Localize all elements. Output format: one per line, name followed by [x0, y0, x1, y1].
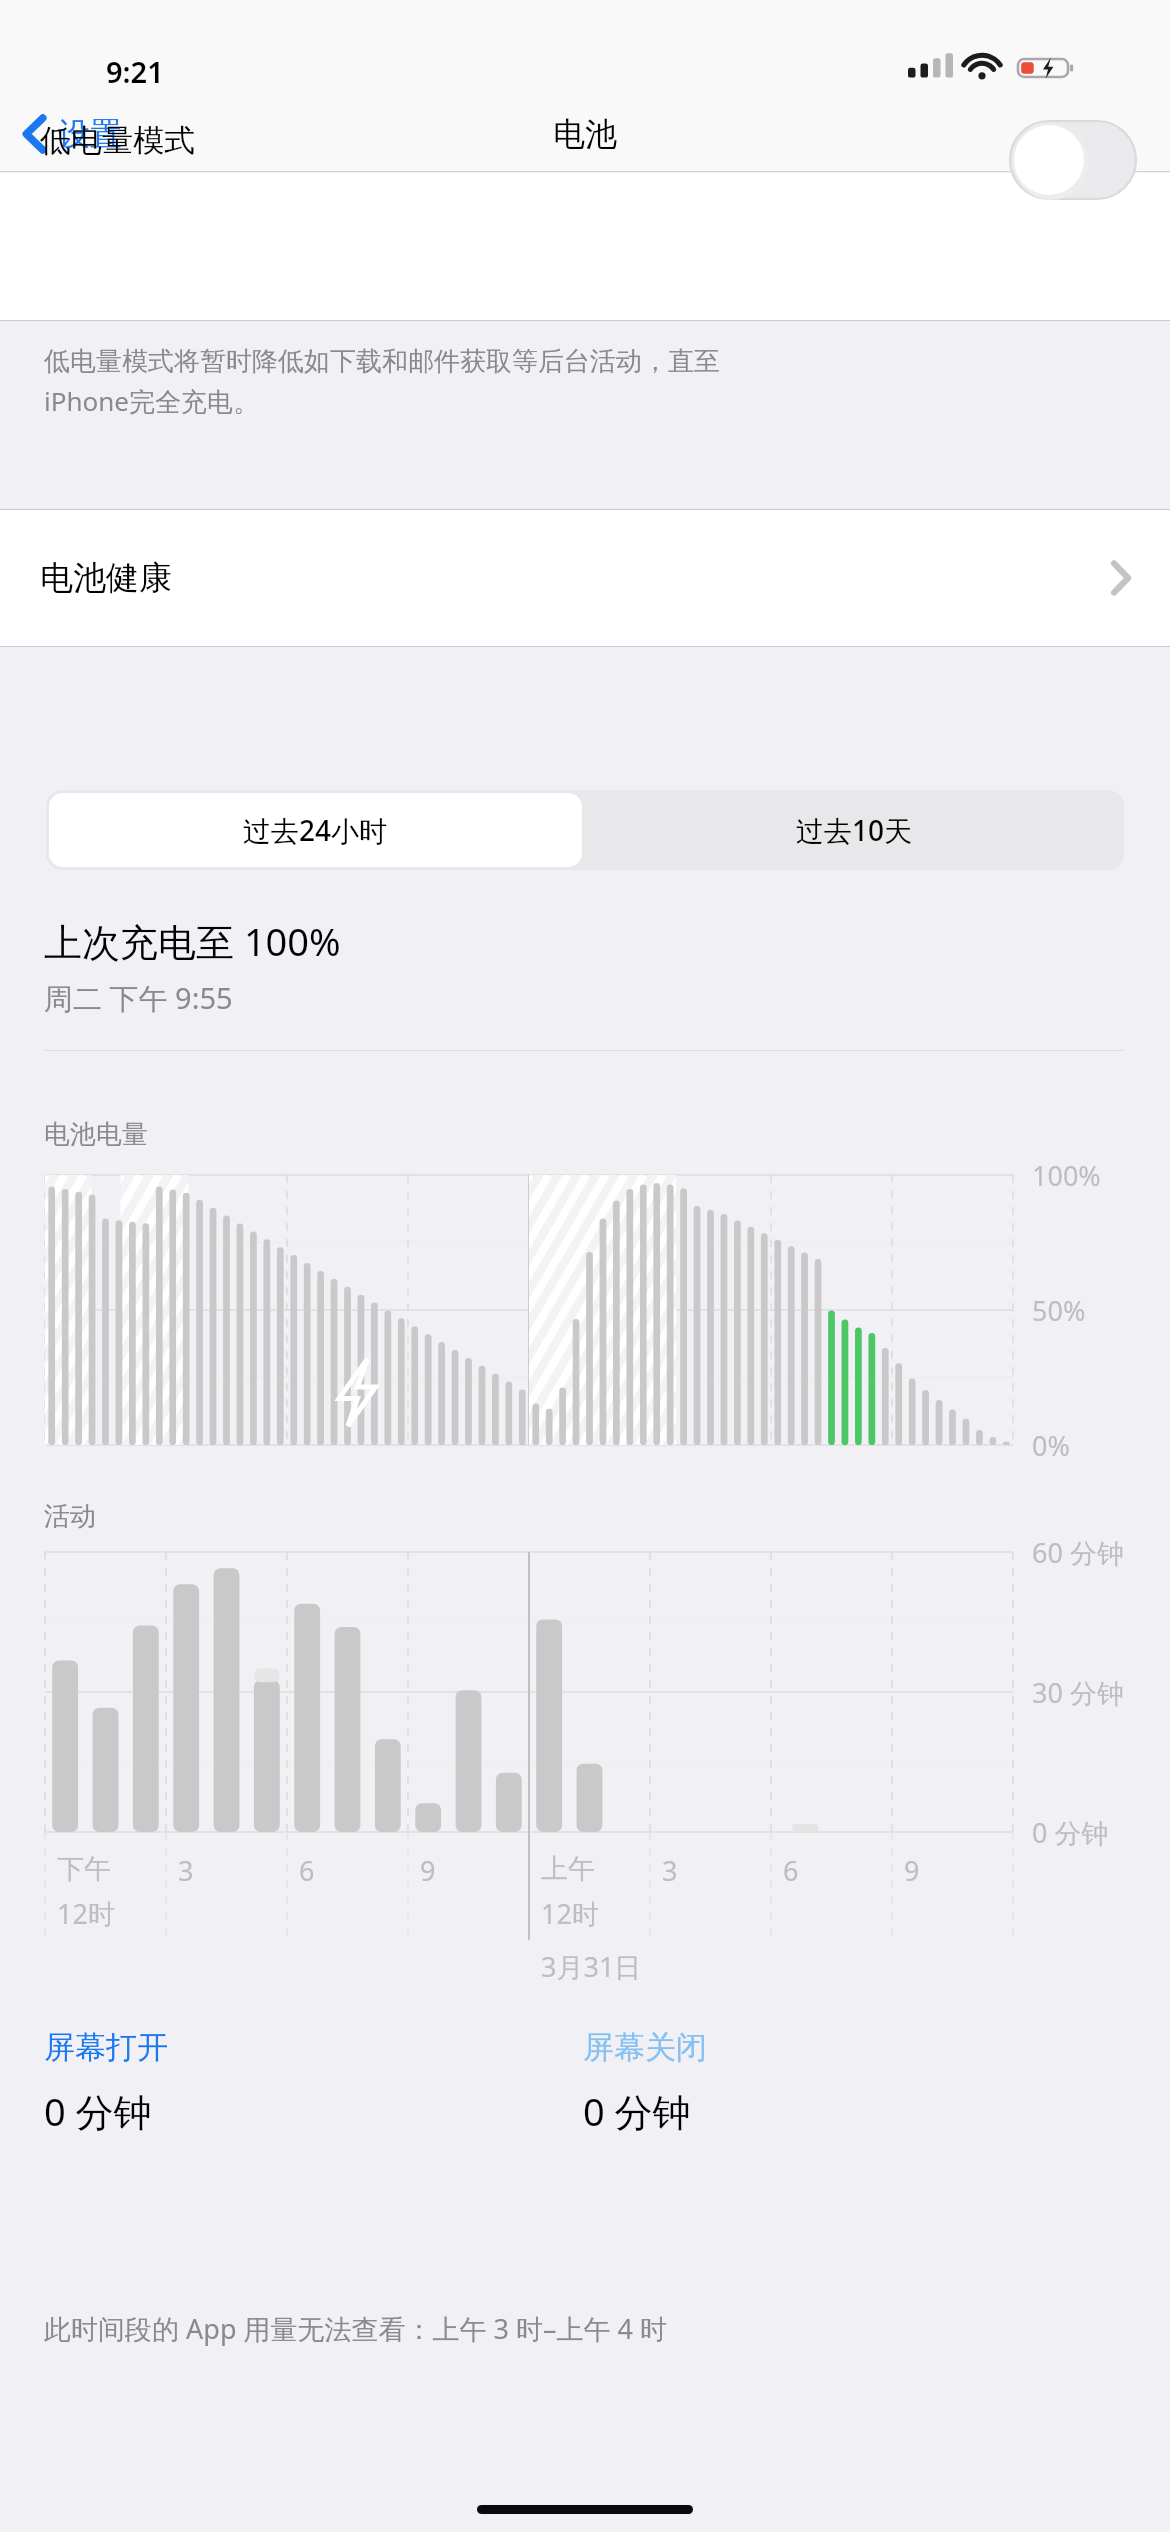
- button[interactable]: 电池健康: [0, 510, 1170, 646]
- staticText: 6: [783, 1852, 799, 1889]
- staticText: 0 分钟: [44, 2085, 152, 2137]
- staticText: 电池: [553, 114, 617, 154]
- staticText: 6: [299, 1852, 315, 1889]
- staticText: 上次充电至 100%: [44, 915, 341, 967]
- staticText: 下午 12时: [57, 1852, 115, 1932]
- staticText: 3: [178, 1852, 194, 1889]
- staticText: 电池电量: [44, 1118, 148, 1151]
- staticText: 30 分钟: [1032, 1674, 1124, 1711]
- staticText: 100%: [1032, 1157, 1101, 1194]
- staticText: 设置: [58, 114, 122, 154]
- staticText: 上午 12时: [541, 1852, 599, 1932]
- staticText: 屏幕关闭: [583, 2028, 707, 2067]
- staticText: 此时间段的 App 用量无法查看：上午 3 时–上午 4 时: [44, 2310, 667, 2347]
- button[interactable]: 低电量模式: [1010, 121, 1136, 199]
- staticText: 屏幕打开: [44, 2028, 168, 2067]
- staticText: 3月31日: [541, 1948, 642, 1985]
- staticText: 9: [420, 1852, 436, 1889]
- button[interactable]: 过去24小时: [49, 793, 582, 867]
- staticText: 0 分钟: [583, 2085, 691, 2137]
- staticText: 活动: [44, 1500, 96, 1533]
- staticText: 过去24小时: [243, 811, 388, 849]
- staticText: 过去10天: [796, 811, 913, 849]
- button[interactable]: 过去10天: [585, 790, 1124, 870]
- staticText: 60 分钟: [1032, 1534, 1124, 1571]
- staticText: 50%: [1032, 1292, 1086, 1329]
- button[interactable]: 设置: [0, 104, 140, 164]
- staticText: 电池健康: [40, 557, 172, 599]
- staticText: 0%: [1032, 1427, 1070, 1464]
- staticText: 0 分钟: [1032, 1814, 1109, 1851]
- staticText: 低电量模式: [40, 121, 195, 160]
- staticText: 9: [904, 1852, 920, 1889]
- staticText: 3: [662, 1852, 678, 1889]
- staticText: 9:21: [106, 52, 164, 91]
- staticText: 周二 下午 9:55: [44, 978, 233, 1018]
- staticText: 低电量模式将暂时降低如下载和邮件获取等后台活动，直至 iPhone完全充电。: [44, 345, 1134, 419]
